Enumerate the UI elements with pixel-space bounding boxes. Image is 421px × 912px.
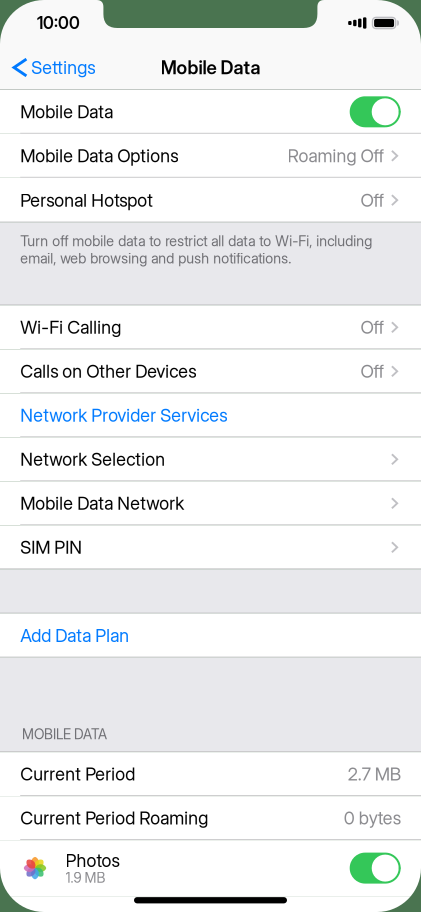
staticText: Photos	[66, 850, 120, 871]
staticText: Network Provider Services	[20, 404, 227, 426]
staticText: MOBILE DATA	[22, 726, 107, 743]
staticText: Off	[360, 360, 383, 382]
button[interactable]: Current Period	[0, 752, 421, 796]
staticText: Mobile Data	[20, 101, 113, 123]
staticText: Settings	[31, 57, 95, 78]
staticText: Personal Hotspot	[20, 189, 153, 211]
button[interactable]: Current Period Roaming	[0, 796, 421, 840]
staticText: Network Selection	[20, 448, 165, 470]
staticText: Mobile Data	[160, 56, 260, 79]
staticText: 10:00	[37, 13, 80, 33]
button[interactable]: Photos	[0, 840, 421, 896]
button[interactable]: Network Selection	[0, 437, 421, 481]
button[interactable]: Personal Hotspot	[0, 178, 421, 222]
button[interactable]: Mobile Data Options	[0, 134, 421, 178]
staticText: 0 bytes	[344, 807, 401, 829]
staticText: Off	[360, 189, 383, 211]
staticText: 1.9 MB	[66, 869, 106, 886]
button[interactable]: Mobile Data	[0, 90, 421, 134]
button[interactable]: SIM PIN	[0, 525, 421, 569]
staticText: Mobile Data Network	[20, 492, 184, 514]
button[interactable]: Add Data Plan	[0, 613, 421, 658]
staticText: Add Data Plan	[20, 625, 129, 646]
staticText: Turn off mobile data to restrict all dat…	[20, 232, 372, 267]
button[interactable]: Network Provider Services	[0, 393, 421, 437]
button[interactable]: Calls on Other Devices	[0, 349, 421, 393]
button[interactable]: Settings	[0, 46, 104, 89]
staticText: Wi-Fi Calling	[20, 316, 121, 338]
button[interactable]: Wi-Fi Calling	[0, 305, 421, 349]
staticText: Mobile Data Options	[20, 145, 178, 167]
button[interactable]: Mobile Data Network	[0, 481, 421, 525]
staticText: Current Period Roaming	[20, 807, 208, 829]
staticText: SIM PIN	[20, 536, 82, 558]
staticText: Calls on Other Devices	[20, 360, 196, 382]
staticText: Off	[360, 316, 383, 338]
staticText: Roaming Off	[287, 145, 383, 167]
staticText: Current Period	[20, 763, 135, 785]
staticText: 2.7 MB	[348, 763, 401, 785]
